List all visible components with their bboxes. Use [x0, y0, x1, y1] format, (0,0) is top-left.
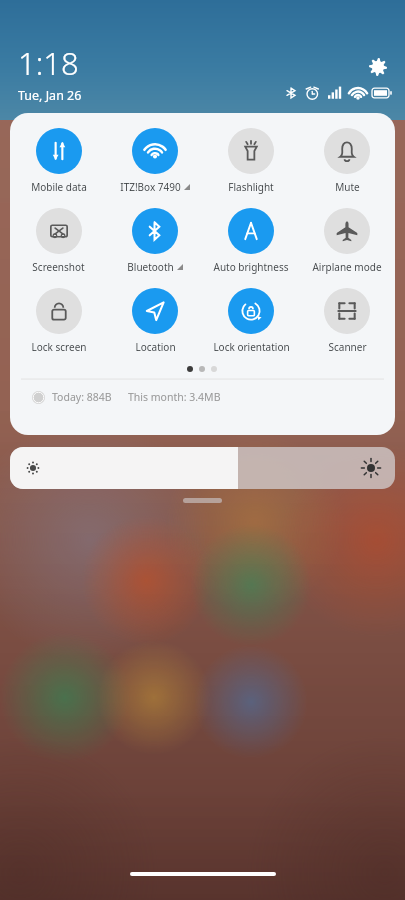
- staticText: Airplane mode: [312, 260, 382, 274]
- staticText: Bluetooth: [127, 260, 174, 274]
- staticText: Today: 884B: [52, 390, 112, 404]
- staticText: Lock orientation: [213, 340, 290, 354]
- button[interactable]: Expand: [183, 498, 222, 503]
- staticText: Auto brightness: [213, 260, 289, 274]
- button[interactable]: Brightness: [10, 447, 395, 489]
- button[interactable]: Settings: [365, 54, 391, 80]
- button[interactable]: Today: 884B: [32, 387, 395, 407]
- staticText: 1:18: [18, 42, 79, 84]
- staticText: Scanner: [328, 340, 367, 354]
- button[interactable]: Auto brightness: [203, 206, 299, 276]
- staticText: This month: 3.4MB: [128, 390, 221, 404]
- button[interactable]: Scanner: [299, 286, 395, 356]
- staticText: Mobile data: [31, 180, 87, 194]
- staticText: Lock screen: [31, 340, 87, 354]
- staticText: ITZ!Box 7490: [120, 180, 181, 194]
- button[interactable]: Screenshot: [10, 206, 107, 276]
- button[interactable]: Lock screen: [10, 286, 107, 356]
- button[interactable]: ITZ!Box 7490: [107, 126, 203, 196]
- staticText: Flashlight: [228, 180, 274, 194]
- staticText: Tue, Jan 26: [18, 87, 82, 104]
- button[interactable]: Airplane mode: [299, 206, 395, 276]
- button[interactable]: Flashlight: [203, 126, 299, 196]
- staticText: Mute: [335, 180, 360, 194]
- button[interactable]: Mute: [299, 126, 395, 196]
- button[interactable]: Mobile data: [10, 126, 107, 196]
- button[interactable]: Location: [107, 286, 203, 356]
- button[interactable]: Bluetooth: [107, 206, 203, 276]
- staticText: Screenshot: [32, 260, 85, 274]
- button[interactable]: Lock orientation: [203, 286, 299, 356]
- staticText: Location: [135, 340, 176, 354]
